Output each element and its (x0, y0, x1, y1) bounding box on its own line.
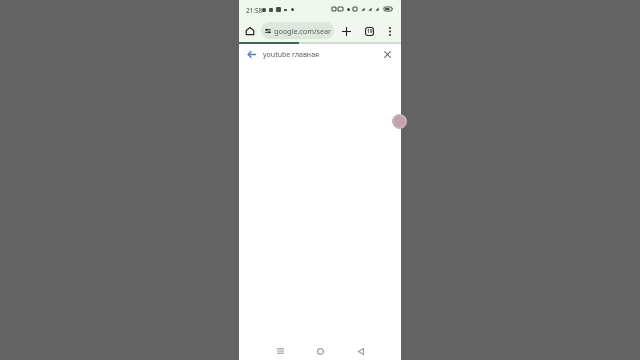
button[interactable]: Home (312, 343, 328, 359)
button[interactable]: google.com/sear (261, 22, 334, 39)
staticText: 19 (367, 28, 373, 35)
button[interactable]: Recent apps (272, 343, 288, 359)
button[interactable]: Back (353, 343, 369, 359)
button[interactable]: Floating chat bubble (392, 114, 407, 129)
button[interactable]: Home (242, 23, 258, 39)
button[interactable]: Clear search (379, 46, 395, 62)
button[interactable]: More options (382, 23, 398, 39)
staticText: 21:58 (246, 6, 263, 15)
button[interactable]: New tab (338, 23, 354, 39)
staticText: youtube главная (263, 50, 320, 60)
button[interactable]: Back (243, 46, 259, 62)
staticText: google.com/sear (274, 26, 332, 36)
button[interactable]: Switch tabs (361, 23, 377, 39)
